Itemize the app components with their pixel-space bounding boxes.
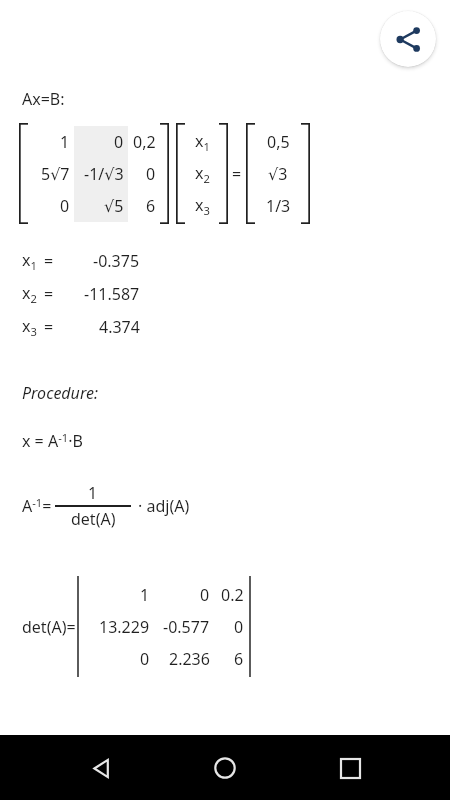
staticText: -0.577 [163,616,210,638]
button[interactable]: Share [380,11,436,67]
staticText: Procedure: [22,382,99,404]
staticText: 0.2 [221,584,244,606]
staticText: 0 [140,648,150,670]
staticText: det(A)= [22,616,76,638]
staticText: 1 [140,584,150,606]
staticText: Ax=B: [22,88,65,110]
staticText: 5√7 [41,163,70,185]
staticText: 13.229 [99,616,150,638]
button[interactable]: Recent apps [326,744,374,792]
staticText: 0 [60,195,70,217]
staticText: 1 [88,482,98,504]
staticText: 6 [234,648,244,670]
button[interactable]: Home [201,744,249,792]
staticText: 1 [60,131,70,153]
staticText: 0,2 [133,131,156,153]
staticText: x2 [22,282,37,306]
staticText: 1/3 [266,195,291,217]
staticText: x = [22,430,48,452]
staticText: 0 [234,616,244,638]
staticText: -0.375 [93,250,140,272]
staticText: x1 [195,130,210,154]
button[interactable]: Back [77,744,125,792]
staticText: x2 [195,162,210,186]
staticText: -11.587 [84,283,140,305]
staticText: x1 [22,249,37,273]
staticText: det(A) [71,508,116,530]
staticText: A-1= [22,495,52,517]
staticText: = [44,316,54,338]
staticText: √3 [268,163,288,185]
staticText: = [44,250,54,272]
staticText: 2.236 [169,648,210,670]
staticText: 0 [146,163,156,185]
staticText: 0,5 [267,131,290,153]
staticText: √5 [104,195,124,217]
staticText: x3 [195,194,210,218]
staticText: 0 [200,584,210,606]
staticText: = [232,163,242,185]
staticText: x3 [22,315,37,339]
staticText: -1/√3 [84,163,124,185]
staticText: 4.374 [99,316,140,338]
staticText: · adj(A) [138,495,190,517]
staticText: = [44,283,54,305]
staticText: 6 [146,195,156,217]
staticText: A-1·B [48,430,83,452]
staticText: 0 [114,131,124,153]
